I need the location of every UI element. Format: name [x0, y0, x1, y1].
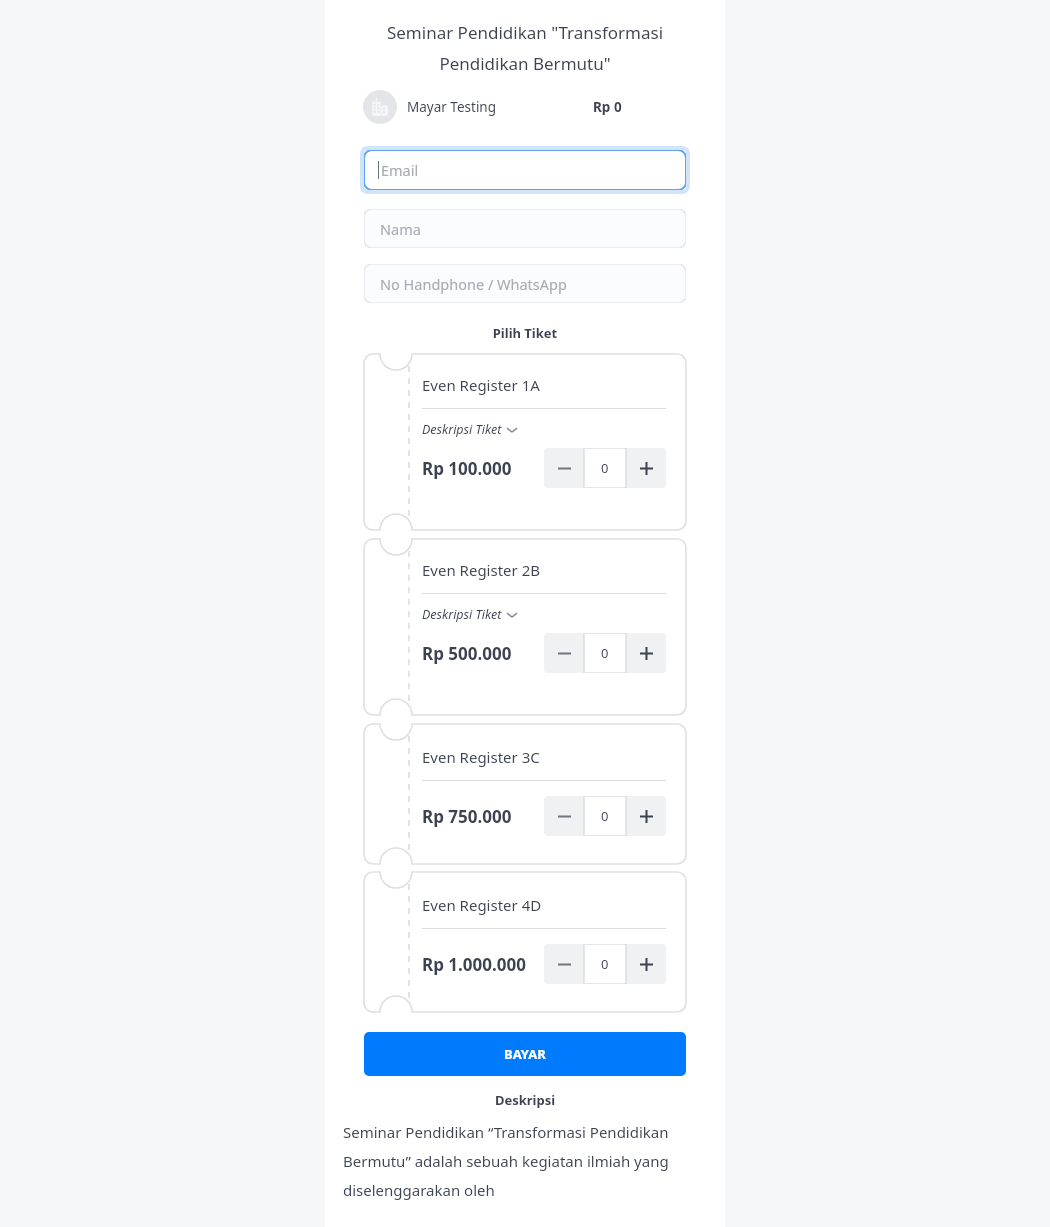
staticText: Deskripsi: [325, 1091, 725, 1109]
button[interactable]: Deskripsi Tiket: [422, 421, 517, 438]
button[interactable]: Increase quantity: [626, 944, 666, 984]
staticText: Seminar Pendidikan "Transformasi Pendidi…: [347, 21, 703, 75]
staticText: Pilih Tiket: [325, 324, 725, 342]
button[interactable]: Email: [364, 150, 686, 190]
staticText: 0: [601, 807, 609, 825]
button[interactable]: 0: [584, 944, 626, 984]
staticText: No Handphone / WhatsApp: [380, 274, 567, 294]
staticText: Nama: [380, 219, 421, 239]
button[interactable]: No Handphone / WhatsApp: [364, 264, 686, 303]
button[interactable]: Decrease quantity: [544, 944, 584, 984]
staticText: Even Register 2B: [422, 560, 540, 580]
button[interactable]: Increase quantity: [626, 796, 666, 836]
staticText: 0: [601, 459, 609, 477]
staticText: Rp 0: [593, 98, 622, 116]
button[interactable]: Increase quantity: [626, 448, 666, 488]
staticText: Even Register 3C: [422, 747, 540, 767]
staticText: 0: [601, 644, 609, 662]
button[interactable]: 0: [584, 448, 626, 488]
button[interactable]: 0: [584, 633, 626, 673]
staticText: Even Register 1A: [422, 375, 540, 395]
staticText: Mayar Testing: [407, 98, 497, 116]
staticText: Seminar Pendidikan “Transformasi Pendidi…: [343, 1122, 707, 1200]
button[interactable]: Increase quantity: [626, 633, 666, 673]
staticText: Deskripsi Tiket: [422, 421, 502, 438]
staticText: BAYAR: [504, 1045, 546, 1063]
staticText: Rp 100.000: [422, 457, 512, 480]
staticText: Email: [381, 160, 419, 180]
staticText: Even Register 4D: [422, 895, 542, 915]
staticText: Rp 1.000.000: [422, 953, 526, 976]
button[interactable]: BAYAR: [364, 1032, 686, 1076]
button[interactable]: Even Register 3C: [364, 724, 686, 864]
button[interactable]: Even Register 1A: [364, 354, 686, 530]
button[interactable]: Decrease quantity: [544, 796, 584, 836]
button[interactable]: Decrease quantity: [544, 633, 584, 673]
staticText: Rp 750.000: [422, 805, 512, 828]
staticText: Deskripsi Tiket: [422, 606, 502, 623]
button[interactable]: Decrease quantity: [544, 448, 584, 488]
staticText: Rp 500.000: [422, 642, 512, 665]
button[interactable]: Even Register 2B: [364, 539, 686, 715]
button[interactable]: Deskripsi Tiket: [422, 606, 517, 623]
staticText: 0: [601, 955, 609, 973]
button[interactable]: 0: [584, 796, 626, 836]
button[interactable]: Even Register 4D: [364, 872, 686, 1012]
button[interactable]: Nama: [364, 209, 686, 248]
